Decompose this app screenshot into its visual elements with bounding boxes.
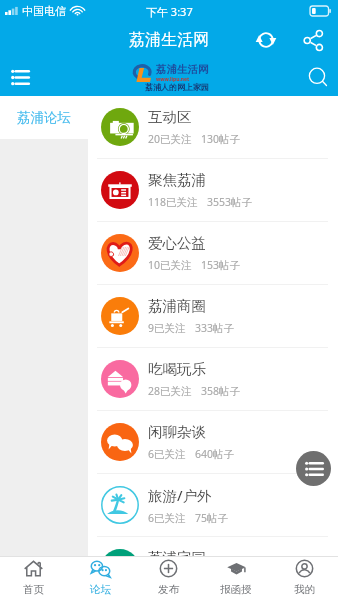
button[interactable]: Refresh — [248, 22, 284, 58]
staticText: 旅游/户外 — [148, 485, 212, 505]
staticText: 发布 — [158, 583, 179, 596]
button[interactable]: 荔浦宅园 — [88, 537, 338, 556]
staticText: 640帖子 — [195, 447, 235, 461]
button[interactable]: 我的 — [270, 557, 338, 600]
staticText: 3553帖子 — [207, 195, 253, 209]
button[interactable]: 荔浦商圈 — [88, 285, 338, 347]
button[interactable]: 互动区 — [88, 96, 338, 158]
staticText: 10已关注 — [148, 258, 192, 272]
button[interactable]: 吃喝玩乐 — [88, 348, 338, 410]
staticText: 荔浦宅园 — [148, 549, 206, 556]
staticText: 6已关注 — [148, 511, 186, 525]
button[interactable]: Search — [298, 58, 338, 96]
button[interactable]: 首页 — [0, 557, 67, 600]
staticText: 118已关注 — [148, 195, 198, 209]
button[interactable]: 论坛 — [67, 557, 134, 600]
staticText: 荔浦生活网 — [129, 30, 209, 50]
button[interactable]: 报函授 — [202, 557, 270, 600]
staticText: 130帖子 — [201, 132, 241, 146]
staticText: 荔浦论坛 — [17, 109, 71, 126]
staticText: 中国电信 — [22, 4, 66, 18]
staticText: 爱心公益 — [148, 234, 206, 252]
staticText: 9已关注 — [148, 321, 186, 335]
staticText: 6已关注 — [148, 447, 186, 461]
staticText: 28已关注 — [148, 384, 192, 398]
staticText: 荔浦商圈 — [148, 297, 206, 315]
staticText: 荔浦人的网上家园 — [145, 82, 209, 92]
staticText: 论坛 — [90, 583, 111, 596]
staticText: 75帖子 — [195, 511, 229, 525]
button[interactable]: 旅游/户外 — [88, 474, 338, 536]
button[interactable]: Menu — [0, 58, 40, 96]
staticText: 聚焦荔浦 — [148, 171, 206, 189]
staticText: 闲聊杂谈 — [148, 423, 206, 441]
staticText: 吃喝玩乐 — [148, 360, 206, 378]
staticText: 互动区 — [148, 108, 192, 126]
button[interactable]: Categories — [296, 451, 331, 486]
button[interactable]: 发布 — [134, 557, 202, 600]
staticText: www.lipu.net — [156, 76, 190, 83]
staticText: 报函授 — [220, 583, 252, 596]
staticText: 首页 — [23, 583, 44, 596]
button[interactable]: Share — [295, 22, 331, 58]
button[interactable]: 聚焦荔浦 — [88, 159, 338, 221]
staticText: 153帖子 — [201, 258, 241, 272]
staticText: 358帖子 — [201, 384, 241, 398]
button[interactable]: 闲聊杂谈 — [88, 411, 338, 473]
button[interactable]: 爱心公益 — [88, 222, 338, 284]
staticText: 荔浦生活网 — [156, 63, 209, 76]
button[interactable]: 荔浦论坛 — [0, 96, 88, 139]
staticText: 下午 3:37 — [146, 4, 193, 19]
staticText: 我的 — [294, 583, 315, 596]
staticText: 333帖子 — [195, 321, 235, 335]
staticText: 20已关注 — [148, 132, 192, 146]
